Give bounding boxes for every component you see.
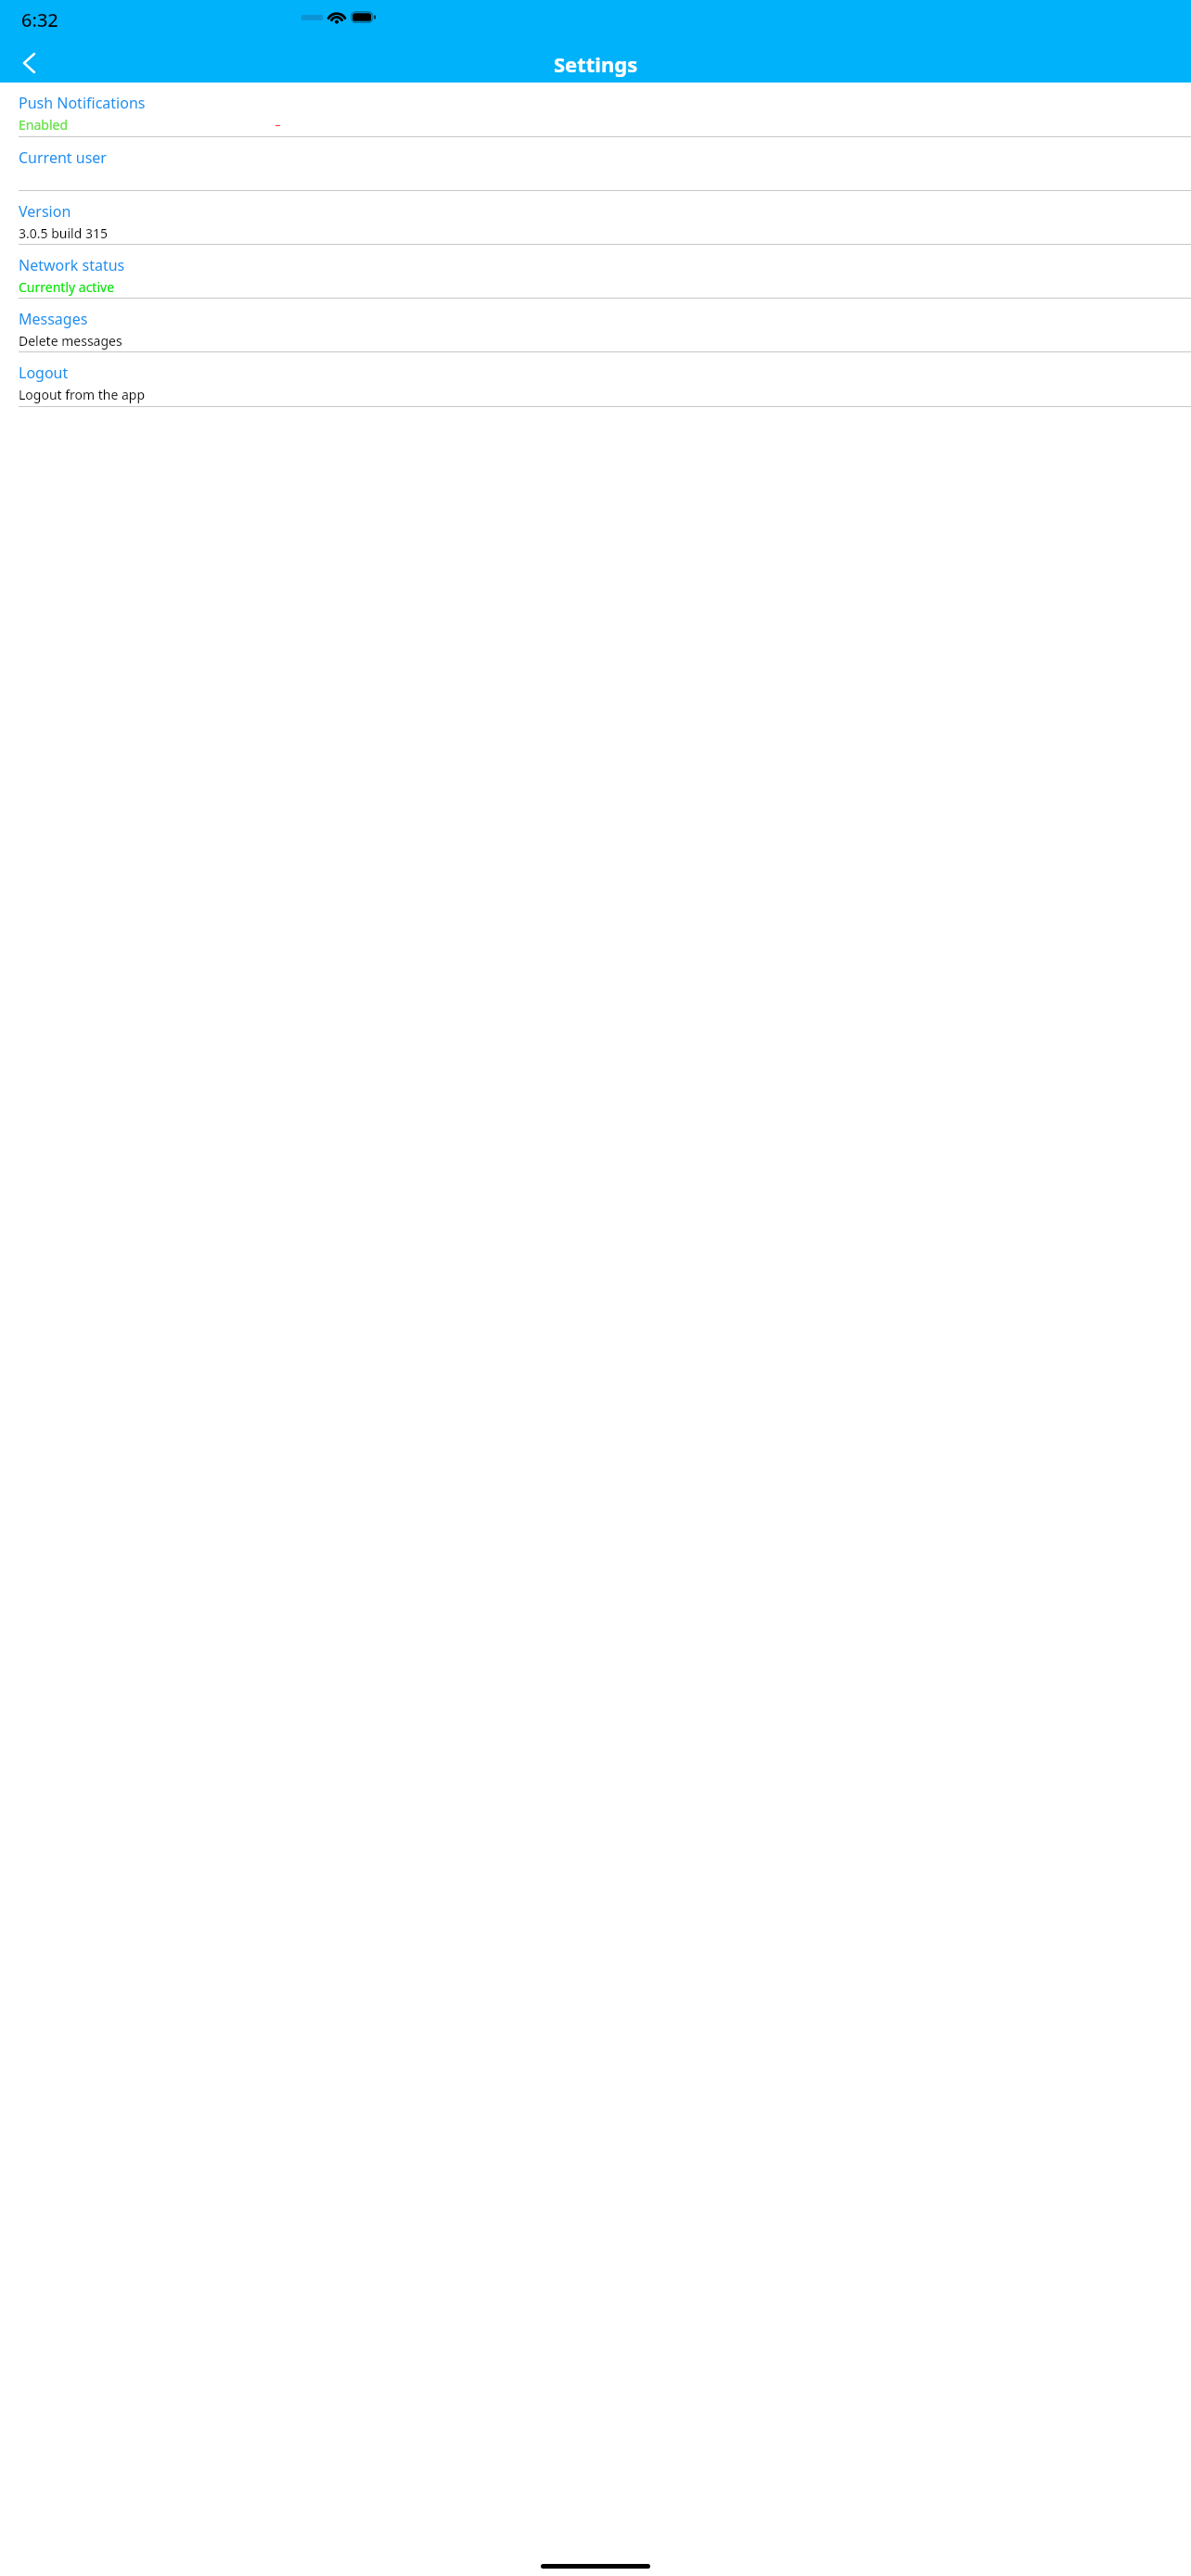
staticText: Logout from the app xyxy=(19,386,146,403)
staticText: Delete messages xyxy=(19,332,122,350)
staticText: Logout xyxy=(19,363,69,383)
button[interactable]: Current user xyxy=(0,137,1191,191)
staticText: 6:32 xyxy=(21,7,58,32)
button[interactable]: Push Notifications xyxy=(0,83,1191,137)
button[interactable]: Logout xyxy=(0,352,1191,407)
staticText: Currently active xyxy=(19,278,115,296)
button[interactable]: Messages xyxy=(0,299,1191,352)
staticText: Settings xyxy=(554,50,638,78)
button[interactable]: Back xyxy=(7,42,50,84)
staticText: 3.0.5 build 315 xyxy=(19,224,108,242)
staticText: Enabled xyxy=(19,116,69,134)
staticText: Network status xyxy=(19,255,125,275)
staticText: Current user xyxy=(19,147,107,168)
staticText: Version xyxy=(19,201,71,222)
staticText: Push Notifications xyxy=(19,93,146,113)
staticText: Messages xyxy=(19,309,88,329)
button[interactable]: Version xyxy=(0,191,1191,245)
button[interactable]: Network status xyxy=(0,245,1191,299)
